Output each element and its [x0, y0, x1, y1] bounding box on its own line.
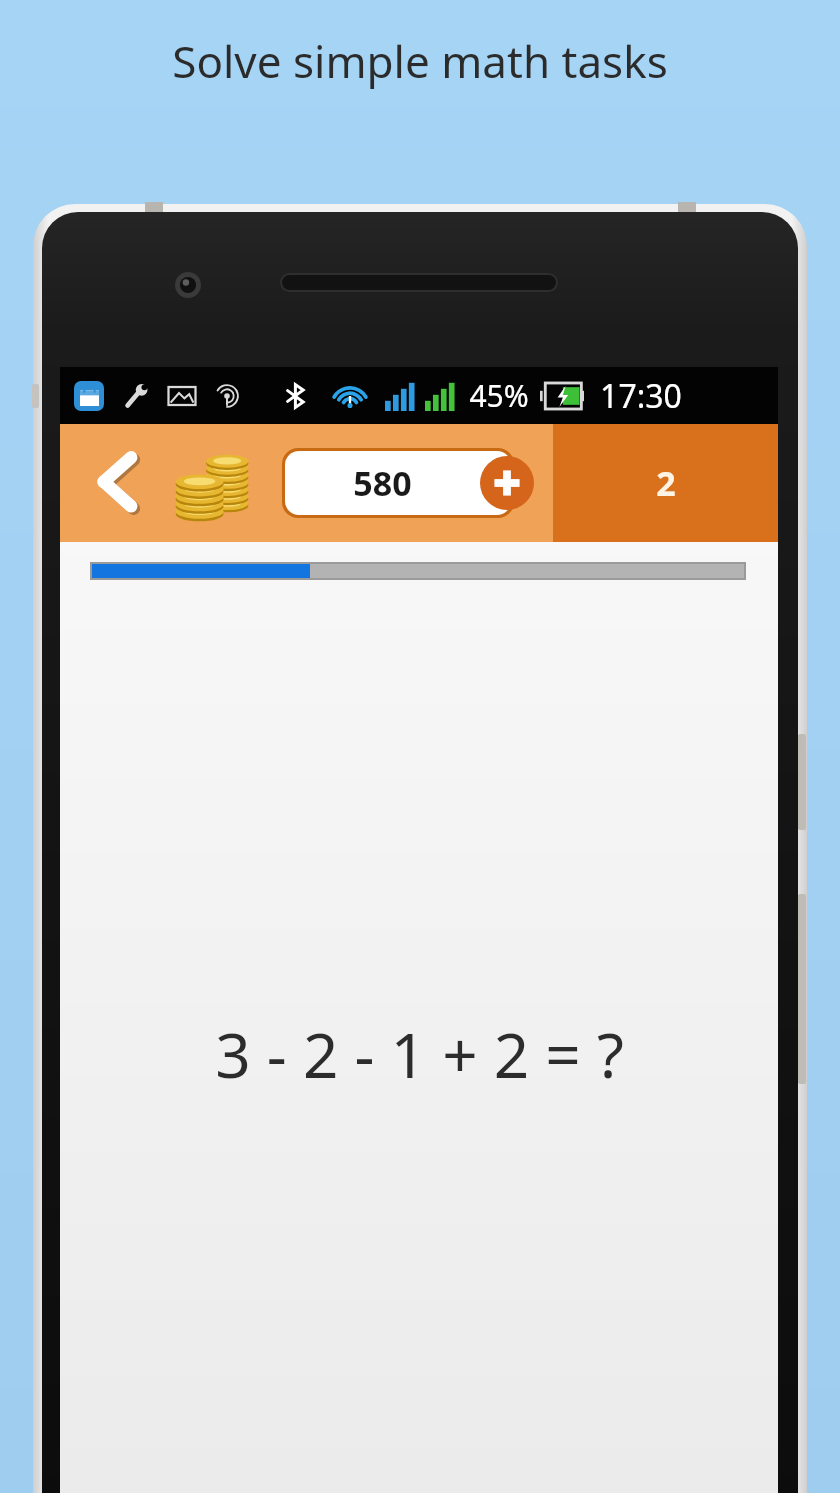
staticText: 45%	[469, 375, 529, 416]
button[interactable]: Add coins	[480, 456, 534, 510]
button[interactable]: 580	[282, 448, 514, 518]
staticText: 580	[353, 460, 412, 506]
staticText: 2	[656, 460, 676, 506]
button[interactable]: 2	[553, 424, 778, 542]
staticText: 17:30	[600, 374, 682, 418]
staticText: 3 - 2 - 1 + 2 = ?	[215, 1012, 624, 1096]
staticText: Solve simple math tasks	[172, 31, 668, 91]
button[interactable]: Back	[70, 424, 164, 542]
